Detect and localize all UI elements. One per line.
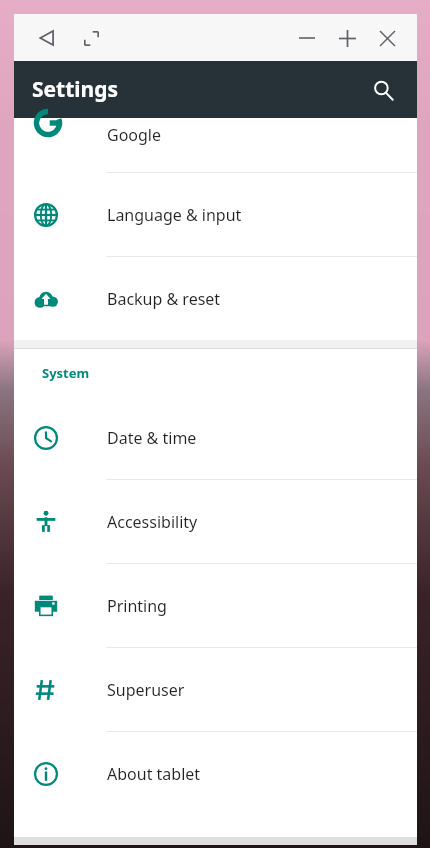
staticText: Printing bbox=[107, 595, 167, 617]
button[interactable]: Printing bbox=[14, 564, 417, 647]
button[interactable]: Close bbox=[367, 18, 407, 58]
staticText: Settings bbox=[32, 75, 119, 104]
button[interactable]: Search bbox=[361, 68, 405, 112]
button[interactable]: Date & time bbox=[14, 396, 417, 479]
button[interactable]: About tablet bbox=[14, 732, 417, 815]
staticText: Accessibility bbox=[107, 511, 198, 533]
button[interactable]: Google bbox=[14, 118, 417, 172]
button[interactable]: Accessibility bbox=[14, 480, 417, 563]
staticText: Language & input bbox=[107, 204, 242, 226]
staticText: System bbox=[42, 364, 90, 382]
button[interactable]: Back bbox=[30, 21, 64, 55]
button[interactable]: Resize window bbox=[74, 21, 108, 55]
staticText: Superuser bbox=[107, 679, 185, 701]
button[interactable]: Minimize bbox=[287, 18, 327, 58]
staticText: Date & time bbox=[107, 427, 197, 449]
staticText: Google bbox=[107, 124, 162, 146]
button[interactable]: Superuser bbox=[14, 648, 417, 731]
button[interactable]: Language & input bbox=[14, 173, 417, 256]
staticText: Backup & reset bbox=[107, 288, 221, 310]
button[interactable]: Maximize bbox=[327, 18, 367, 58]
staticText: About tablet bbox=[107, 763, 201, 785]
button[interactable]: Backup & reset bbox=[14, 257, 417, 340]
